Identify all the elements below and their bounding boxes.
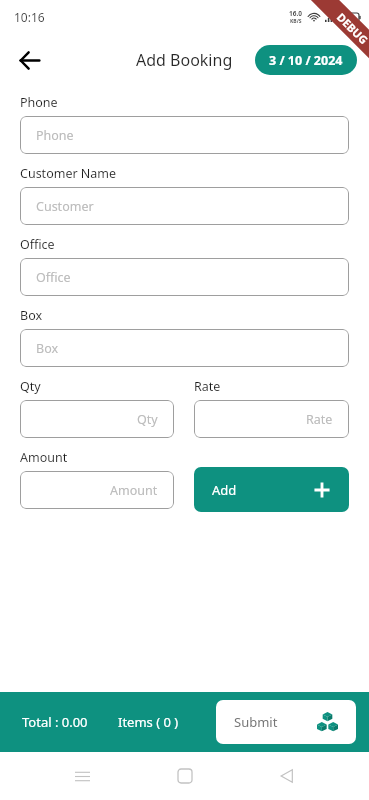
button[interactable]: 3 / 10 / 2024 <box>255 45 357 75</box>
staticText: Customer <box>36 198 94 215</box>
button[interactable]: Phone <box>20 116 349 154</box>
staticText: Phone <box>20 94 58 111</box>
staticText: Office <box>36 269 71 286</box>
staticText: Office <box>20 236 55 253</box>
button[interactable]: Box <box>20 329 349 367</box>
staticText: KB/S <box>290 18 302 25</box>
staticText: Phone <box>36 127 74 144</box>
staticText: DEBUG <box>334 10 369 47</box>
button[interactable]: Back <box>267 756 307 796</box>
staticText: Rate <box>194 378 221 395</box>
button[interactable]: Amount <box>20 471 174 509</box>
staticText: 10:16 <box>14 9 45 25</box>
button[interactable]: Add <box>194 467 349 512</box>
staticText: Submit <box>234 713 278 731</box>
staticText: Box <box>20 307 43 324</box>
button[interactable]: Customer <box>20 187 349 225</box>
button[interactable]: Rate <box>194 400 349 438</box>
staticText: Customer Name <box>20 165 117 182</box>
staticText: Rate <box>306 411 333 428</box>
button[interactable]: Recent apps <box>62 756 102 796</box>
staticText: Add Booking <box>136 49 233 71</box>
staticText: Amount <box>20 449 68 466</box>
staticText: 16.0 <box>289 9 302 18</box>
button[interactable]: Home <box>165 756 205 796</box>
staticText: Amount <box>110 482 158 499</box>
staticText: Qty <box>20 378 41 395</box>
button[interactable]: Office <box>20 258 349 296</box>
button[interactable]: Submit <box>216 700 356 744</box>
staticText: 3 / 10 / 2024 <box>269 52 343 69</box>
staticText: Box <box>36 340 59 357</box>
button[interactable]: Back <box>8 39 50 81</box>
staticText: Items ( 0 ) <box>118 713 179 731</box>
button[interactable]: Qty <box>20 400 174 438</box>
staticText: Add <box>212 481 237 499</box>
staticText: Qty <box>137 411 158 428</box>
staticText: Total : 0.00 <box>22 713 88 731</box>
